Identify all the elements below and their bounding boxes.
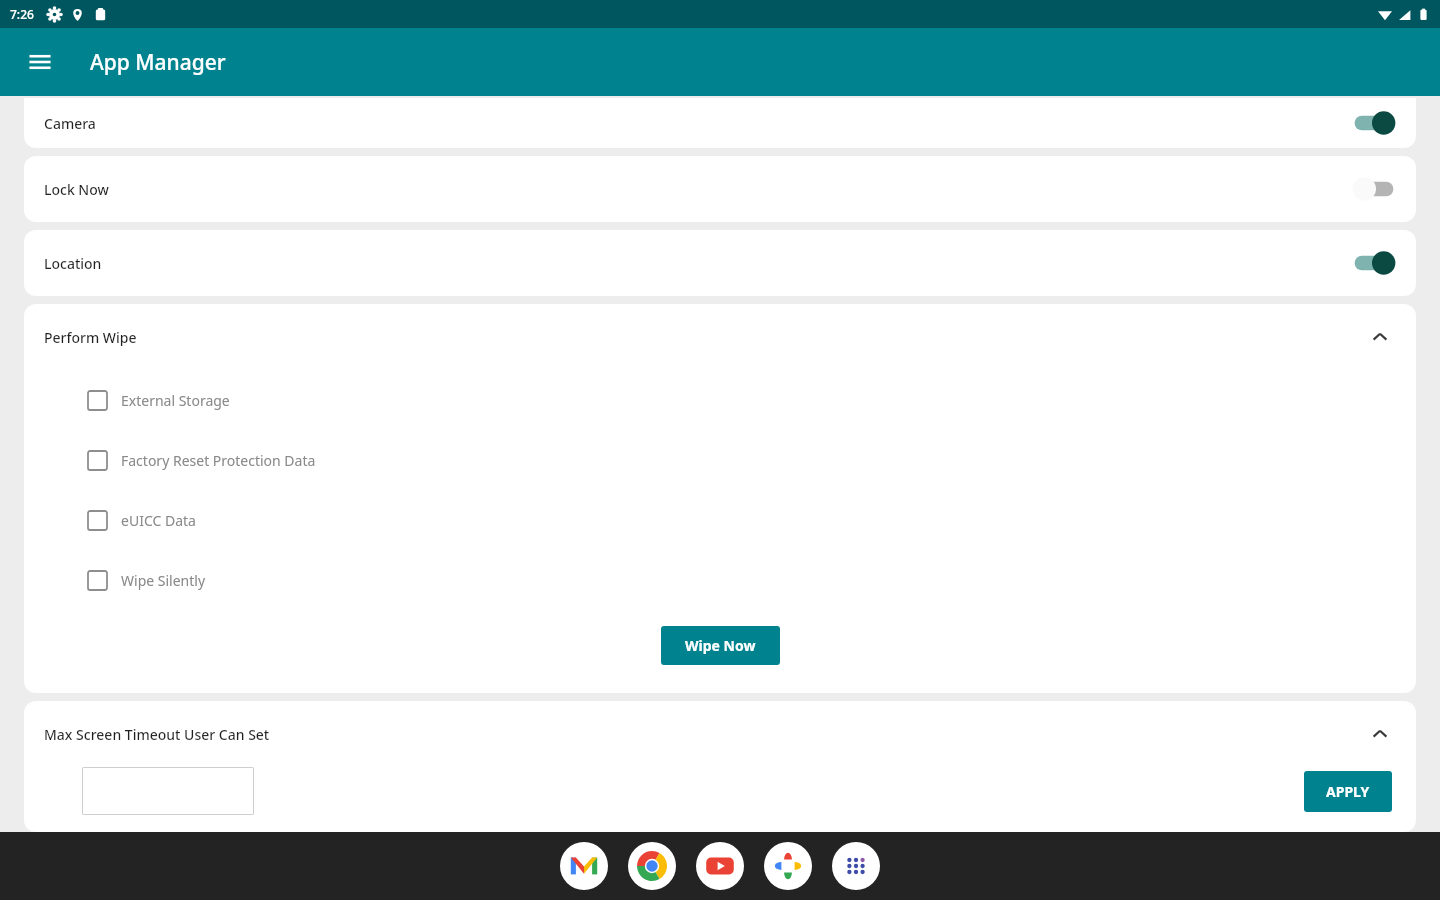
- staticText: Location: [44, 254, 1352, 273]
- button[interactable]: YouTube: [696, 842, 744, 890]
- button[interactable]: Open navigation menu: [14, 36, 66, 88]
- staticText: Wipe Silently: [121, 571, 206, 590]
- button[interactable]: All apps: [832, 842, 880, 890]
- button[interactable]: Collapse section: [1364, 718, 1396, 750]
- other: Toggle on: [1352, 250, 1396, 276]
- button[interactable]: Wipe Silently: [24, 550, 1416, 610]
- button[interactable]: Lock Now: [24, 156, 1416, 222]
- other: Toggle on: [1352, 110, 1396, 136]
- button[interactable]: Google Photos: [764, 842, 812, 890]
- staticText: App Manager: [90, 48, 226, 77]
- staticText: Camera: [44, 114, 1352, 133]
- other: Toggle off: [1352, 176, 1396, 202]
- button[interactable]: Perform Wipe: [24, 304, 1416, 370]
- button[interactable]: Factory Reset Protection Data: [24, 430, 1416, 490]
- staticText: 7:26: [10, 6, 34, 22]
- button[interactable]: External Storage: [24, 370, 1416, 430]
- button[interactable]: [82, 767, 254, 815]
- staticText: External Storage: [121, 391, 230, 410]
- button[interactable]: Gmail: [560, 842, 608, 890]
- staticText: Max Screen Timeout User Can Set: [44, 725, 1364, 744]
- button[interactable]: Camera: [24, 98, 1416, 148]
- button[interactable]: Wipe Now: [661, 626, 780, 665]
- button[interactable]: eUICC Data: [24, 490, 1416, 550]
- button[interactable]: Max Screen Timeout User Can Set: [24, 701, 1416, 767]
- staticText: Factory Reset Protection Data: [121, 451, 316, 470]
- staticText: Wipe Now: [685, 636, 756, 655]
- button[interactable]: Collapse section: [1364, 321, 1396, 353]
- button[interactable]: APPLY: [1304, 771, 1392, 812]
- staticText: eUICC Data: [121, 511, 196, 530]
- staticText: Perform Wipe: [44, 328, 1364, 347]
- button[interactable]: Chrome: [628, 842, 676, 890]
- staticText: APPLY: [1326, 782, 1370, 801]
- button[interactable]: Location: [24, 230, 1416, 296]
- staticText: Lock Now: [44, 180, 1352, 199]
